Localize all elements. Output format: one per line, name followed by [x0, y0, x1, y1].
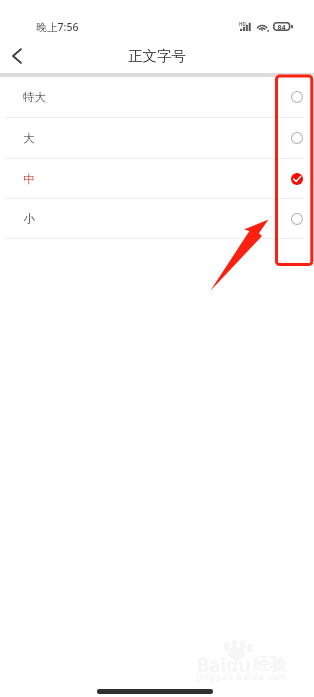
button[interactable]: 小 — [0, 199, 314, 239]
staticText: 中 — [23, 172, 35, 186]
button[interactable]: 大 — [0, 118, 314, 158]
staticText: HD — [239, 21, 246, 27]
button[interactable]: 特大 — [0, 77, 314, 117]
staticText: Baidu — [196, 652, 251, 678]
staticText: jingyan.baidu.com — [197, 671, 288, 683]
staticText: 小 — [23, 212, 35, 226]
staticText: 大 — [23, 131, 35, 145]
staticText: 正文字号 — [128, 47, 186, 65]
button[interactable]: 中 — [0, 159, 314, 199]
staticText: 特大 — [23, 90, 46, 104]
staticText: 84 — [277, 22, 286, 31]
staticText: 晚上7:56 — [36, 20, 79, 34]
staticText: 经验 — [253, 654, 287, 675]
button[interactable]: Back — [2, 38, 32, 72]
